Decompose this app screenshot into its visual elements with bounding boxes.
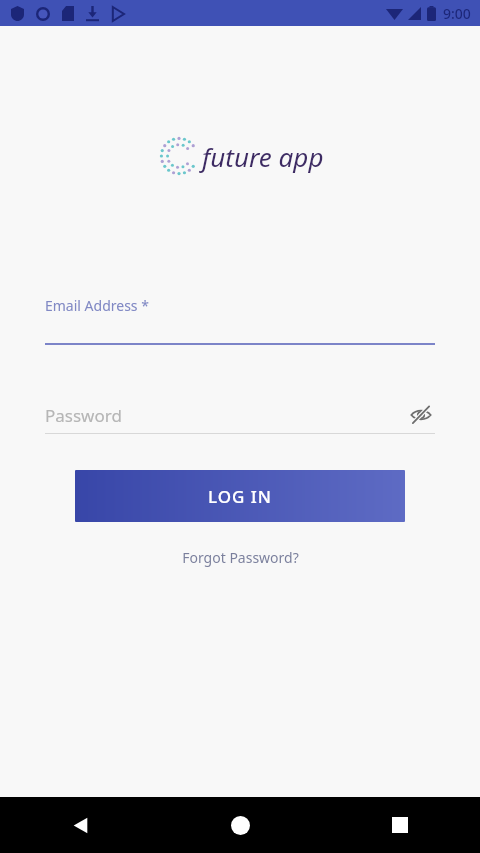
staticText: 9:00 xyxy=(443,4,471,23)
staticText: Email Address * xyxy=(45,296,149,315)
button[interactable]: Show password xyxy=(407,401,435,429)
button[interactable]: Email Address * xyxy=(45,296,435,345)
button[interactable]: LOG IN xyxy=(75,470,405,522)
staticText: Forgot Password? xyxy=(182,548,299,567)
staticText: LOG IN xyxy=(208,485,273,508)
button[interactable]: Recent apps xyxy=(320,797,480,853)
button[interactable]: Password xyxy=(45,401,435,434)
staticText: Password xyxy=(45,404,407,427)
staticText: future app xyxy=(202,139,324,174)
button[interactable]: Back xyxy=(0,797,160,853)
button[interactable]: Forgot Password? xyxy=(174,544,307,571)
button[interactable]: Home xyxy=(160,797,320,853)
